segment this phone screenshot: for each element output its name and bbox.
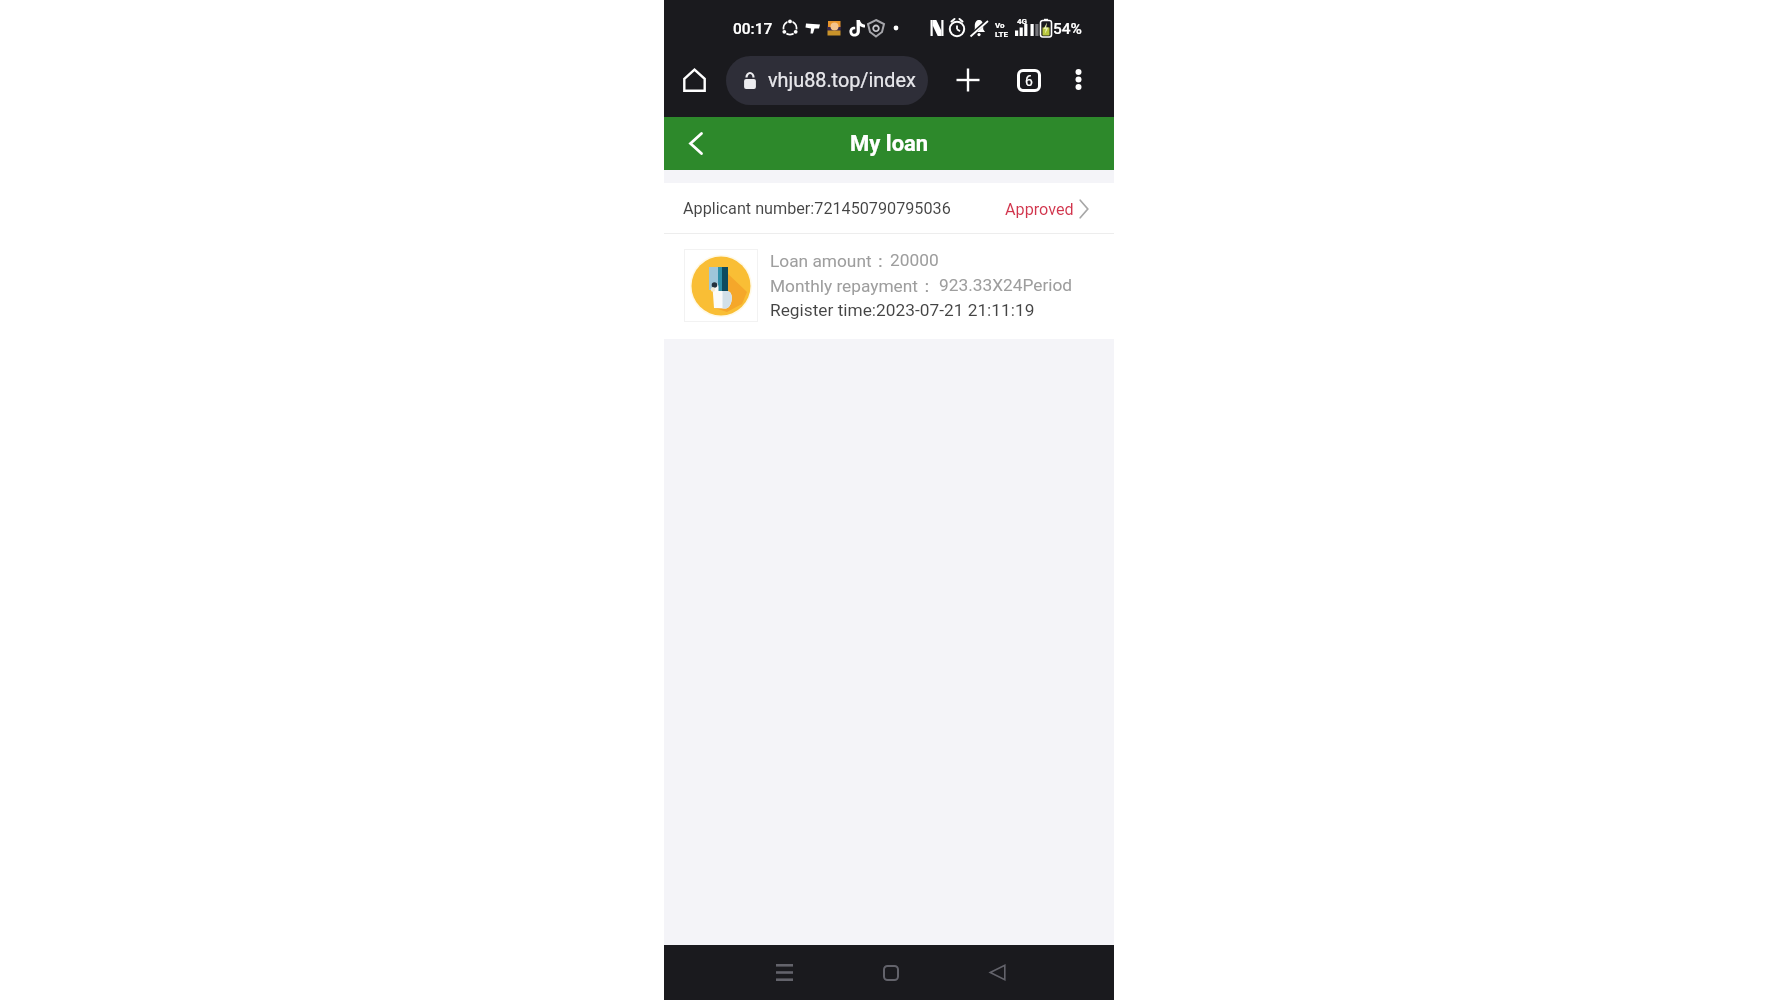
button[interactable]: Recent apps (754, 946, 814, 999)
staticText: 00:17 (733, 20, 773, 38)
staticText: Monthly repayment： (770, 275, 936, 297)
staticText: 4G (1017, 17, 1028, 26)
staticText: Loan amount： (770, 250, 889, 272)
button[interactable]: Applicant number:721450790795036 (664, 183, 1114, 234)
button[interactable]: Tabs (1008, 59, 1050, 101)
staticText: Register time:2023-07-21 21:11:19 (770, 300, 1035, 320)
staticText: Vo (995, 21, 1005, 30)
staticText: 6 (1025, 73, 1033, 89)
staticText: My loan (850, 131, 929, 157)
staticText: Approved (1005, 200, 1074, 219)
staticText: Applicant number:721450790795036 (683, 199, 951, 218)
staticText: vhju88.top/index (768, 69, 916, 92)
staticText: LTE (995, 30, 1008, 39)
button[interactable]: Loan amount： (664, 234, 1114, 339)
button[interactable]: Home (861, 946, 921, 999)
button[interactable]: More options (1058, 59, 1098, 99)
button[interactable]: Address bar (726, 56, 928, 105)
staticText: 923.33X24Period (939, 275, 1073, 295)
button[interactable]: Back (967, 946, 1027, 999)
staticText: 54% (1053, 20, 1083, 38)
button[interactable]: Back (670, 117, 722, 170)
button[interactable]: New tab (947, 59, 989, 101)
button[interactable]: Home (672, 58, 716, 102)
staticText: 20000 (890, 250, 939, 270)
